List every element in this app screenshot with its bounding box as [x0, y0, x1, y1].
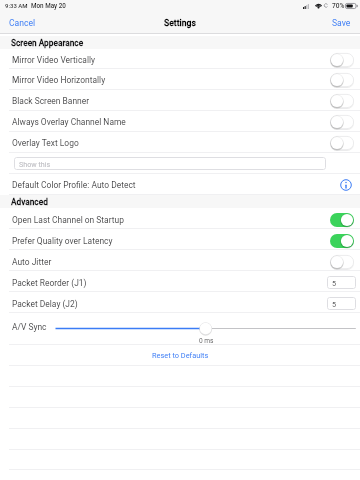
- button[interactable]: Toggle on: [330, 234, 354, 248]
- button[interactable]: Black Screen Banner: [0, 90, 360, 111]
- other: Battery 70 percent: [345, 3, 358, 9]
- button[interactable]: Mirror Video Vertically: [0, 49, 360, 70]
- button[interactable]: Auto Jitter: [0, 251, 360, 272]
- staticText: 5: [332, 300, 337, 308]
- button[interactable]: Packet Delay (J2): [0, 293, 360, 314]
- staticText: Advanced: [11, 197, 48, 207]
- button[interactable]: Toggle off: [330, 73, 354, 87]
- button[interactable]: Toggle off: [330, 53, 354, 67]
- staticText: Packet Delay (J2): [12, 299, 78, 309]
- button[interactable]: Info: [340, 179, 352, 191]
- other: Cellular signal: [303, 4, 309, 9]
- staticText: Always Overlay Channel Name: [12, 117, 126, 127]
- staticText: Show this: [19, 160, 51, 168]
- staticText: Open Last Channel on Startup: [12, 215, 124, 225]
- staticText: Mirror Video Vertically: [12, 55, 96, 65]
- staticText: 0 ms: [199, 337, 214, 345]
- staticText: A/V Sync: [12, 322, 47, 332]
- staticText: Default Color Profile: Auto Detect: [12, 180, 136, 190]
- staticText: 9:33 AM: [5, 2, 28, 9]
- button[interactable]: 5: [327, 276, 356, 289]
- button[interactable]: Save: [324, 13, 360, 33]
- staticText: Prefer Quality over Latency: [12, 236, 113, 246]
- staticText: Screen Appearance: [11, 38, 84, 48]
- staticText: Save: [332, 18, 351, 28]
- staticText: Mon May 20: [31, 2, 66, 9]
- other: Do not disturb: [324, 3, 328, 8]
- button[interactable]: Always Overlay Channel Name: [0, 111, 360, 132]
- staticText: Black Screen Banner: [12, 96, 90, 106]
- button[interactable]: Prefer Quality over Latency: [0, 230, 360, 251]
- button[interactable]: 5: [327, 297, 356, 310]
- staticText: Overlay Text Logo: [12, 138, 79, 148]
- button[interactable]: Toggle on: [330, 213, 354, 227]
- staticText: Reset to Defaults: [152, 351, 209, 360]
- button[interactable]: Toggle off: [330, 136, 354, 150]
- button[interactable]: Toggle off: [330, 94, 354, 108]
- button[interactable]: Default Color Profile: Auto Detect: [0, 174, 360, 195]
- staticText: 5: [332, 279, 337, 287]
- button[interactable]: Open Last Channel on Startup: [0, 209, 360, 230]
- button[interactable]: Show this: [14, 157, 326, 170]
- button[interactable]: Mirror Video Horizontally: [0, 69, 360, 90]
- staticText: Auto Jitter: [12, 257, 52, 267]
- button[interactable]: Cancel: [0, 13, 44, 33]
- button[interactable]: Toggle off: [330, 255, 354, 269]
- button[interactable]: Overlay Text Logo: [0, 132, 360, 153]
- button[interactable]: Reset to Defaults: [0, 345, 360, 366]
- other: Wi-Fi: [315, 3, 322, 8]
- staticText: Packet Reorder (J1): [12, 278, 87, 288]
- staticText: Cancel: [9, 18, 36, 28]
- staticText: Settings: [164, 18, 196, 28]
- button[interactable]: Packet Reorder (J1): [0, 272, 360, 293]
- staticText: 70%: [332, 2, 345, 10]
- button[interactable]: Toggle off: [330, 115, 354, 129]
- button[interactable]: A/V Sync slider: [0, 321, 360, 336]
- staticText: Mirror Video Horizontally: [12, 75, 106, 85]
